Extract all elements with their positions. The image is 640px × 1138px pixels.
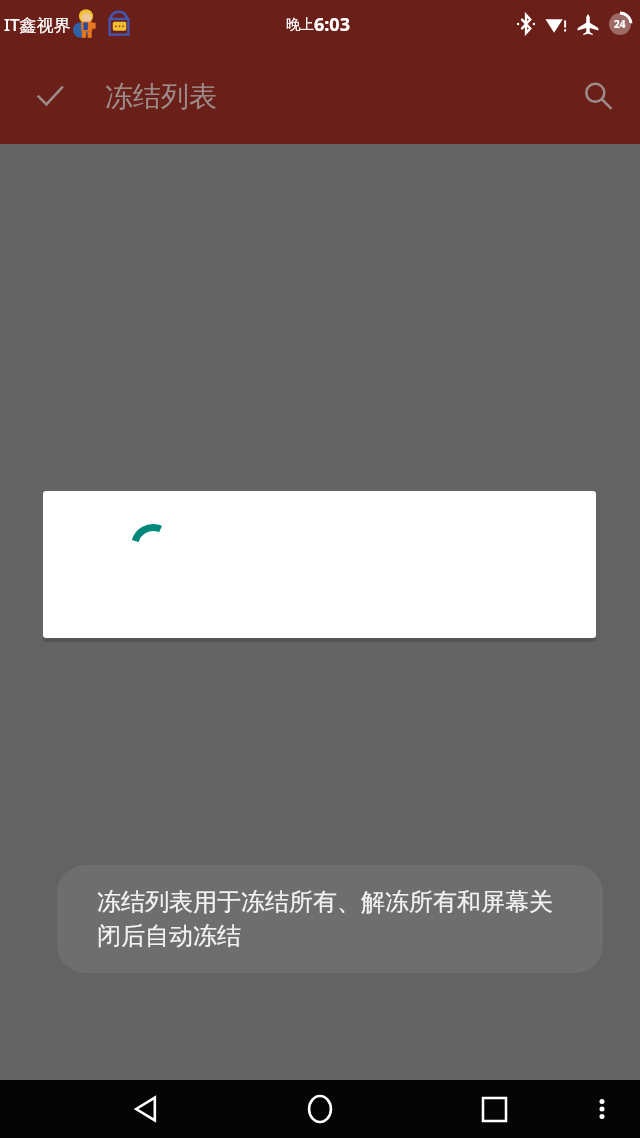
- button[interactable]: Loading: [43, 491, 596, 638]
- staticText: 24: [614, 17, 626, 31]
- button[interactable]: Recent apps: [466, 1081, 522, 1137]
- button[interactable]: 冻结列表用于冻结所有、解冻所有和屏幕关闭后自动冻结: [57, 865, 603, 973]
- button[interactable]: Back: [118, 1081, 174, 1137]
- button[interactable]: Home: [292, 1081, 348, 1137]
- staticText: 冻结列表用于冻结所有、解冻所有和屏幕关闭后自动冻结: [97, 887, 569, 952]
- staticText: 晚上: [286, 16, 314, 34]
- button[interactable]: Done: [22, 68, 78, 124]
- other: Loading: [131, 524, 175, 568]
- button[interactable]: Search: [570, 68, 626, 124]
- staticText: 冻结列表: [105, 79, 217, 114]
- staticText: IT鑫视界: [4, 13, 71, 36]
- staticText: 6:03: [314, 12, 350, 37]
- button[interactable]: More options: [579, 1086, 625, 1132]
